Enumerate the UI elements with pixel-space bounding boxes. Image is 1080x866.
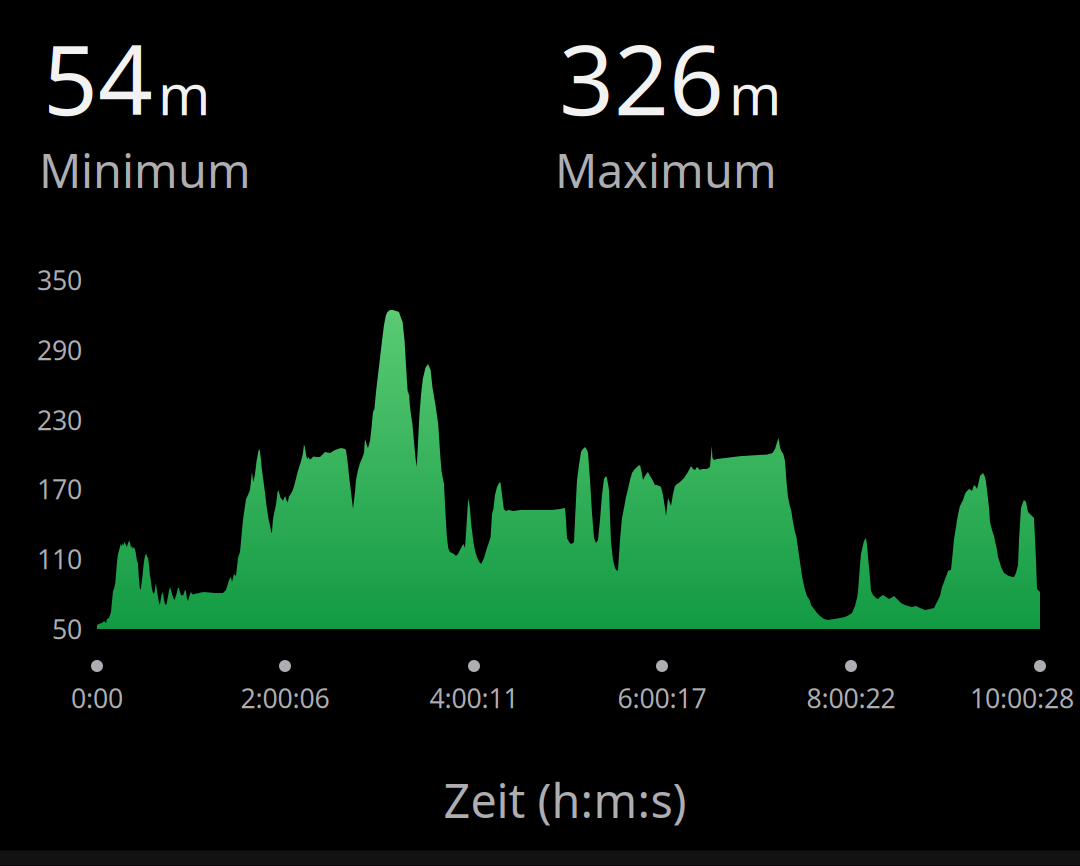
staticText: 230 — [37, 402, 82, 438]
staticText: 54 — [43, 14, 153, 142]
staticText: Zeit (h:m:s) — [443, 769, 686, 831]
staticText: 110 — [37, 541, 82, 577]
staticText: 50 — [52, 611, 82, 647]
staticText: 4:00:11 — [429, 680, 518, 716]
staticText: 10:00:28 — [970, 680, 1074, 716]
staticText: m — [729, 56, 781, 131]
staticText: 350 — [37, 262, 82, 298]
staticText: 0:00 — [71, 680, 123, 716]
staticText: Maximum — [555, 139, 777, 201]
staticText: 290 — [37, 332, 82, 368]
staticText: m — [158, 56, 210, 131]
button[interactable]: 326 — [558, 20, 1018, 200]
staticText: Minimum — [39, 139, 251, 201]
staticText: 6:00:17 — [617, 680, 706, 716]
staticText: 8:00:22 — [806, 680, 895, 716]
button[interactable]: 54 — [42, 20, 502, 200]
staticText: 2:00:06 — [240, 680, 329, 716]
staticText: 170 — [37, 471, 82, 507]
button[interactable]: Elevation chart, 54 to 326 metres — [96, 280, 1039, 629]
staticText: 326 — [559, 14, 724, 142]
